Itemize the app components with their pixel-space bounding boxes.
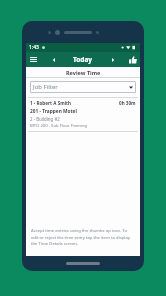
button[interactable]: Today (73, 55, 93, 64)
staticText: 2 - Building #2 (30, 116, 60, 122)
staticText: MTO 200 - Sub Floor Framing (30, 123, 88, 129)
button[interactable]: Open navigation menu (26, 52, 41, 67)
button[interactable]: 1 - Robert A Smith (26, 98, 140, 131)
staticText: Review Time (66, 69, 101, 76)
staticText: 201 - Trappen Motel (30, 108, 77, 115)
staticText: 1 - Robert A Smith (30, 100, 71, 106)
staticText: Job Filter (33, 83, 58, 91)
staticText: 0h 30m (119, 100, 136, 106)
button[interactable]: Previous day (48, 54, 59, 65)
staticText: 1:43 (29, 44, 39, 51)
button[interactable]: Accept time entries (125, 52, 140, 67)
staticText: Accept time entries using the thumbs up … (31, 228, 135, 246)
button[interactable]: Next day (107, 54, 118, 65)
button[interactable]: Job Filter (30, 81, 136, 93)
